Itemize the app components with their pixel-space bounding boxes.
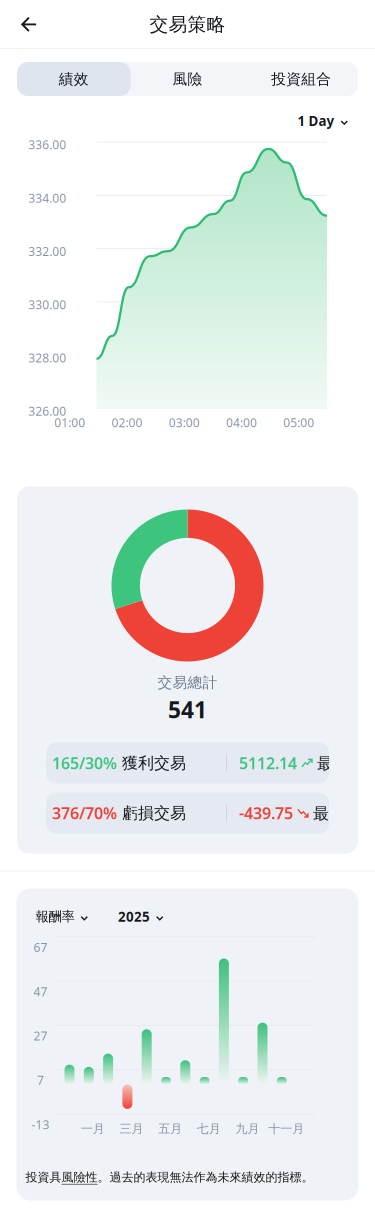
staticText: 十一月 [268, 1121, 304, 1136]
staticText: 獲利交易 [117, 753, 186, 773]
staticText: 04:00 [226, 415, 257, 431]
button[interactable]: 報酬率 [35, 903, 88, 930]
staticText: 5112.14 [239, 752, 297, 774]
staticText: 27 [33, 1028, 47, 1044]
staticText: 67 [33, 939, 47, 955]
button[interactable]: 1 Day [297, 107, 348, 135]
staticText: 541 [168, 694, 207, 725]
staticText: -439.75 [239, 802, 293, 824]
staticText: 七月 [197, 1121, 221, 1136]
staticText: -13 [31, 1116, 49, 1132]
button[interactable]: 風險 [131, 62, 244, 96]
staticText: 05:00 [283, 415, 314, 431]
staticText: 投資具風險性。過去的表現無法作為未來績效的指標。 [25, 1170, 313, 1184]
staticText: 三月 [119, 1121, 143, 1136]
staticText: 330.00 [28, 297, 66, 312]
staticText: 風險 [172, 70, 202, 88]
staticText: 交易策略 [149, 13, 225, 36]
staticText: 376/70% [52, 802, 117, 824]
staticText: 報酬率 [35, 908, 74, 925]
staticText: 336.00 [28, 137, 66, 153]
staticText: 03:00 [169, 415, 200, 431]
staticText: 一月 [81, 1121, 105, 1136]
staticText: 投資組合 [271, 70, 331, 88]
staticText: 1 Day [297, 112, 334, 130]
staticText: 328.00 [28, 350, 66, 366]
staticText: 交易總計 [157, 673, 217, 691]
staticText: 332.00 [28, 243, 66, 259]
button[interactable]: 績效 [17, 62, 131, 96]
staticText: 47 [33, 984, 47, 999]
staticText: 虧損交易 [117, 803, 186, 823]
staticText: 五月 [158, 1121, 182, 1136]
button[interactable]: Back [7, 2, 51, 46]
staticText: 334.00 [28, 190, 66, 206]
button[interactable]: 投資組合 [244, 62, 358, 96]
staticText: 01:00 [54, 415, 85, 431]
staticText: 最差… [313, 802, 358, 824]
button[interactable]: 2025 [118, 903, 163, 930]
staticText: 165/30% [52, 752, 117, 774]
staticText: 326.00 [28, 403, 66, 419]
staticText: 九月 [235, 1121, 259, 1136]
staticText: 7 [37, 1072, 44, 1088]
staticText: 績效 [59, 70, 89, 88]
staticText: 02:00 [112, 415, 143, 431]
staticText: 2025 [118, 908, 150, 925]
staticText: 最佳交… [317, 752, 375, 774]
